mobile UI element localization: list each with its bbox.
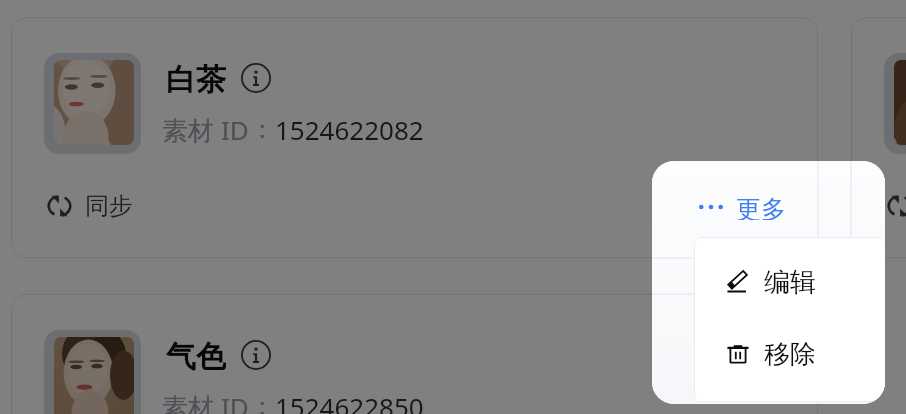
button[interactable]: 更多: [652, 161, 885, 404]
button[interactable]: Info: [241, 340, 271, 370]
button[interactable]: 编辑: [727, 246, 885, 318]
staticText: 素材: [162, 389, 221, 414]
staticText: ID: [221, 389, 249, 414]
staticText: 移除: [764, 338, 816, 371]
staticText: 同步: [85, 191, 133, 221]
button[interactable]: Info: [241, 63, 271, 93]
staticText: ：: [249, 113, 275, 146]
button[interactable]: 同步: [886, 190, 906, 222]
button[interactable]: 气色: [11, 294, 818, 414]
button[interactable]: 红唇: [851, 17, 906, 258]
staticText: 1524622850: [275, 389, 424, 414]
button[interactable]: 同步: [46, 190, 133, 222]
button[interactable]: 白茶: [11, 17, 818, 258]
staticText: 素材: [162, 112, 221, 146]
staticText: ID: [221, 112, 249, 146]
staticText: 编辑: [764, 266, 816, 299]
staticText: 气色: [166, 338, 226, 372]
staticText: 白茶: [166, 61, 226, 95]
button[interactable]: 移除: [727, 318, 885, 390]
staticText: ：: [249, 390, 275, 414]
staticText: 更多: [736, 194, 786, 220]
staticText: 1524622082: [275, 112, 424, 146]
